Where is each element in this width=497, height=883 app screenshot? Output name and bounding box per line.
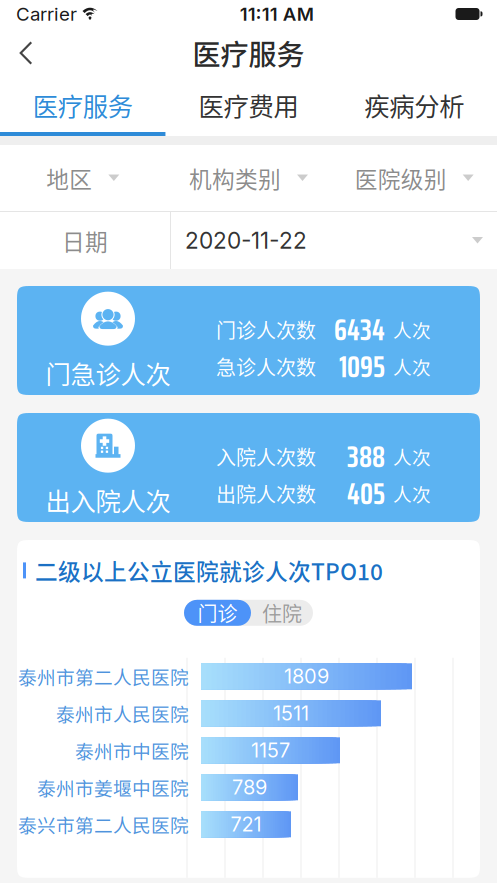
button[interactable]: 机构类别 bbox=[166, 145, 331, 211]
staticText: 泰州市姜堰中医院 bbox=[37, 774, 189, 801]
staticText: 入院人次数 bbox=[216, 442, 316, 471]
staticText: 二级以上公立医院就诊人次TPO10 bbox=[35, 554, 383, 587]
staticText: 1157 bbox=[251, 738, 290, 762]
staticText: 出院人次数 bbox=[216, 479, 316, 508]
button[interactable]: 地区 bbox=[0, 145, 166, 211]
staticText: 地区 bbox=[46, 162, 92, 194]
staticText: 1809 bbox=[284, 664, 329, 688]
staticText: 人次 bbox=[393, 353, 431, 380]
staticText: 405 bbox=[347, 469, 385, 518]
button[interactable]: 医疗服务 bbox=[0, 78, 166, 136]
staticText: 人次 bbox=[393, 443, 431, 470]
staticText: 2020-11-22 bbox=[185, 227, 307, 254]
staticText: 医疗服务 bbox=[33, 87, 133, 123]
button[interactable]: 疾病分析 bbox=[331, 78, 497, 136]
staticText: 721 bbox=[230, 812, 261, 836]
staticText: 门诊 bbox=[197, 598, 237, 627]
staticText: 疾病分析 bbox=[364, 87, 464, 123]
staticText: 住院 bbox=[262, 598, 302, 627]
staticText: 日期 bbox=[62, 224, 108, 257]
staticText: 人次 bbox=[393, 316, 431, 343]
button[interactable]: 医院级别 bbox=[331, 145, 497, 211]
staticText: 出入院人次 bbox=[45, 482, 170, 518]
staticText: 机构类别 bbox=[189, 162, 281, 194]
staticText: 人次 bbox=[393, 480, 431, 507]
button[interactable]: 门诊 bbox=[184, 600, 251, 626]
staticText: 门急诊人次 bbox=[45, 355, 170, 391]
button[interactable]: Back bbox=[0, 31, 71, 75]
button[interactable]: 医疗费用 bbox=[166, 78, 331, 136]
button[interactable]: 住院 bbox=[251, 600, 313, 626]
staticText: 1511 bbox=[273, 701, 309, 725]
staticText: Carrier bbox=[16, 3, 77, 25]
staticText: 388 bbox=[347, 432, 385, 481]
staticText: 11:11 AM bbox=[240, 3, 314, 25]
staticText: 医疗服务 bbox=[192, 33, 304, 73]
staticText: 医院级别 bbox=[355, 162, 447, 194]
staticText: 6434 bbox=[334, 305, 385, 354]
staticText: 门诊人次数 bbox=[216, 315, 316, 344]
staticText: 泰州市中医院 bbox=[75, 737, 189, 764]
staticText: 医疗费用 bbox=[198, 87, 298, 123]
staticText: 泰州市第二人民医院 bbox=[18, 663, 189, 690]
staticText: 泰兴市第二人民医院 bbox=[18, 811, 189, 838]
staticText: 1095 bbox=[339, 342, 385, 391]
staticText: 泰州市人民医院 bbox=[56, 700, 189, 727]
staticText: 789 bbox=[232, 775, 267, 799]
staticText: 急诊人次数 bbox=[216, 352, 316, 381]
button[interactable]: 2020-11-22 bbox=[171, 212, 497, 269]
